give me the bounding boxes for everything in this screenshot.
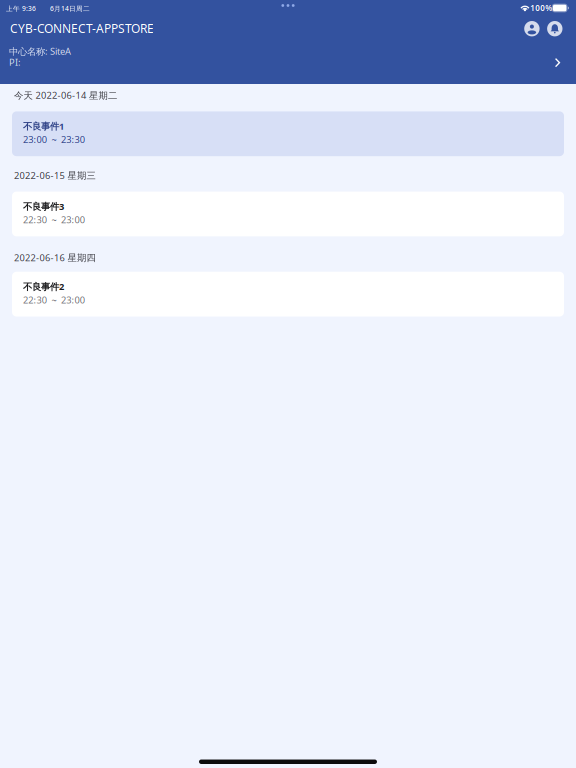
staticText: CYB-CONNECT-APPSTORE <box>10 20 154 36</box>
staticText: 不良事件2 <box>23 280 64 293</box>
staticText: 2022-06-15 星期三 <box>14 169 95 182</box>
button[interactable]: Account <box>524 21 540 36</box>
button[interactable]: 不良事件2 <box>12 272 564 317</box>
button[interactable]: Notifications <box>547 21 562 36</box>
staticText: 22:30 ~ 23:00 <box>23 213 85 226</box>
staticText: 23:00 ~ 23:30 <box>23 133 85 146</box>
staticText: 今天 2022-06-14 星期二 <box>14 89 117 101</box>
staticText: 中心名称: SiteA <box>9 45 71 57</box>
staticText: 100% <box>530 3 552 13</box>
staticText: 上午 9:36 6月14日周二 <box>6 4 90 13</box>
staticText: 不良事件3 <box>23 200 64 212</box>
button[interactable]: 不良事件1 <box>12 111 564 156</box>
staticText: 2022-06-16 星期四 <box>14 251 95 264</box>
staticText: 不良事件1 <box>23 120 64 132</box>
staticText: 22:30 ~ 23:00 <box>23 294 85 306</box>
button[interactable]: 不良事件3 <box>12 192 564 236</box>
staticText: PI: <box>9 56 21 68</box>
button[interactable]: 中心名称: SiteA <box>0 40 576 84</box>
